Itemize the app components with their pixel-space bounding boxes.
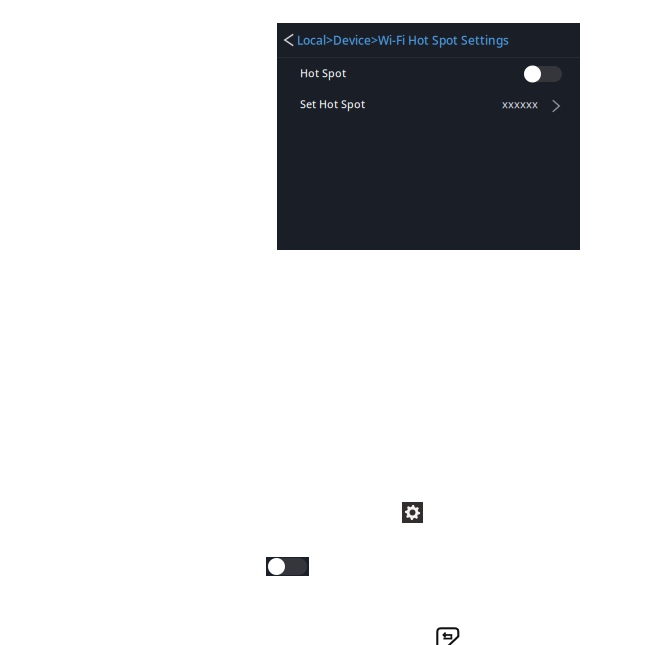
button[interactable]: Settings [402, 502, 423, 523]
button[interactable]: Local>Device>Wi-Fi Hot Spot Settings [277, 23, 580, 57]
staticText: Hot Spot [300, 66, 346, 80]
staticText: Local>Device>Wi-Fi Hot Spot Settings [297, 32, 509, 48]
staticText: xxxxxx [502, 97, 538, 111]
button[interactable]: Back [436, 627, 460, 645]
button[interactable]: Hot Spot [277, 58, 580, 88]
button[interactable]: Set Hot Spot [277, 88, 580, 120]
staticText: Set Hot Spot [300, 97, 365, 111]
button[interactable]: Toggle [266, 557, 309, 576]
